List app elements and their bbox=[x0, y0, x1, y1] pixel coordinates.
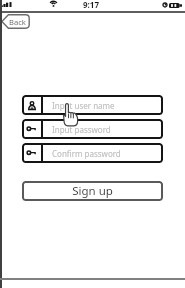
staticText: Back bbox=[9, 17, 26, 27]
staticText: Sign up bbox=[72, 183, 113, 199]
staticText: Input user name bbox=[52, 100, 115, 111]
button[interactable]: Input user name bbox=[22, 95, 163, 115]
button[interactable]: Back bbox=[1, 14, 30, 29]
button[interactable]: Confirm password bbox=[22, 143, 163, 163]
button[interactable]: Sign up bbox=[22, 181, 163, 201]
staticText: 9:17 bbox=[83, 0, 99, 10]
staticText: Input password bbox=[52, 124, 111, 135]
button[interactable]: Input password bbox=[22, 119, 163, 139]
staticText: Confirm password bbox=[52, 148, 121, 159]
